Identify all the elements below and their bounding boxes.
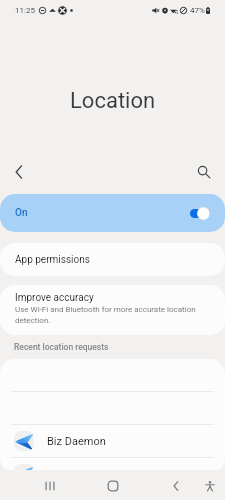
button[interactable]: App permissions [0,243,225,276]
staticText: On [15,207,28,219]
button[interactable]: Location on [190,207,210,220]
button[interactable]: Home [101,474,125,498]
button[interactable]: Google [0,458,225,473]
staticText: Improve accuracy [15,292,94,304]
staticText: Use Wi-Fi and Bluetooth for more accurat… [15,305,203,325]
staticText: Biz Daemon [47,435,106,448]
staticText: 47% [190,6,205,15]
button[interactable]: Back [164,474,188,498]
button[interactable]: Biz Daemon [0,425,225,457]
staticText: Location [70,88,156,114]
button[interactable]: Accessibility [198,474,222,498]
button[interactable]: Improve accuracy [0,285,225,335]
button[interactable]: On [0,194,225,232]
staticText: Google [47,468,82,473]
button[interactable]: Recent apps [38,474,62,498]
button[interactable]: Search [189,157,219,187]
button[interactable]: Navigate up [4,157,34,187]
staticText: App permissions [15,254,90,266]
staticText: Recent location requests [14,342,109,352]
staticText: 11:25 [15,6,35,15]
